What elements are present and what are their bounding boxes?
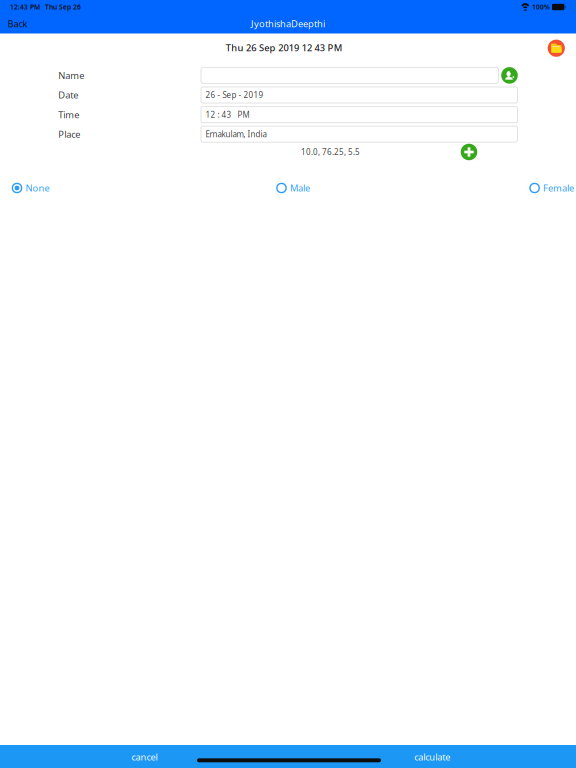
button[interactable]: cancel <box>92 745 196 768</box>
staticText: None <box>25 182 49 194</box>
button[interactable]: None <box>12 182 49 194</box>
button[interactable]: Add location <box>459 142 479 162</box>
staticText: 26 - Sep - 2019 <box>205 90 263 100</box>
button[interactable]: Back <box>0 14 35 33</box>
button[interactable]: Pick from contacts <box>500 66 519 85</box>
staticText: Back <box>7 18 27 30</box>
button[interactable]: Time <box>201 107 517 123</box>
staticText: Time <box>58 108 79 121</box>
staticText: Name <box>58 69 84 82</box>
staticText: Male <box>290 182 310 194</box>
button[interactable]: Place <box>201 126 517 142</box>
button[interactable]: calculate <box>380 745 484 768</box>
staticText: Place <box>58 128 80 140</box>
staticText: calculate <box>414 751 450 763</box>
staticText: Date <box>58 89 78 101</box>
button[interactable]: Saved charts <box>546 38 566 58</box>
staticText: 10.0, 76.25, 5.5 <box>301 147 360 157</box>
staticText: Ernakulam, India <box>205 129 266 139</box>
button[interactable]: Male <box>276 182 310 194</box>
button[interactable]: Female <box>529 182 574 194</box>
staticText: Thu 26 Sep 2019 12 43 PM <box>226 41 343 54</box>
staticText: 12:43 PM <box>10 3 40 11</box>
staticText: 100% <box>532 3 550 11</box>
button[interactable]: Name <box>201 66 498 84</box>
staticText: 12 : 43 PM <box>205 109 249 120</box>
staticText: Thu Sep 26 <box>45 3 81 11</box>
staticText: JyothishaDeepthi <box>251 18 325 30</box>
button[interactable]: Date <box>201 87 517 103</box>
staticText: cancel <box>131 751 157 763</box>
staticText: Female <box>543 182 574 194</box>
